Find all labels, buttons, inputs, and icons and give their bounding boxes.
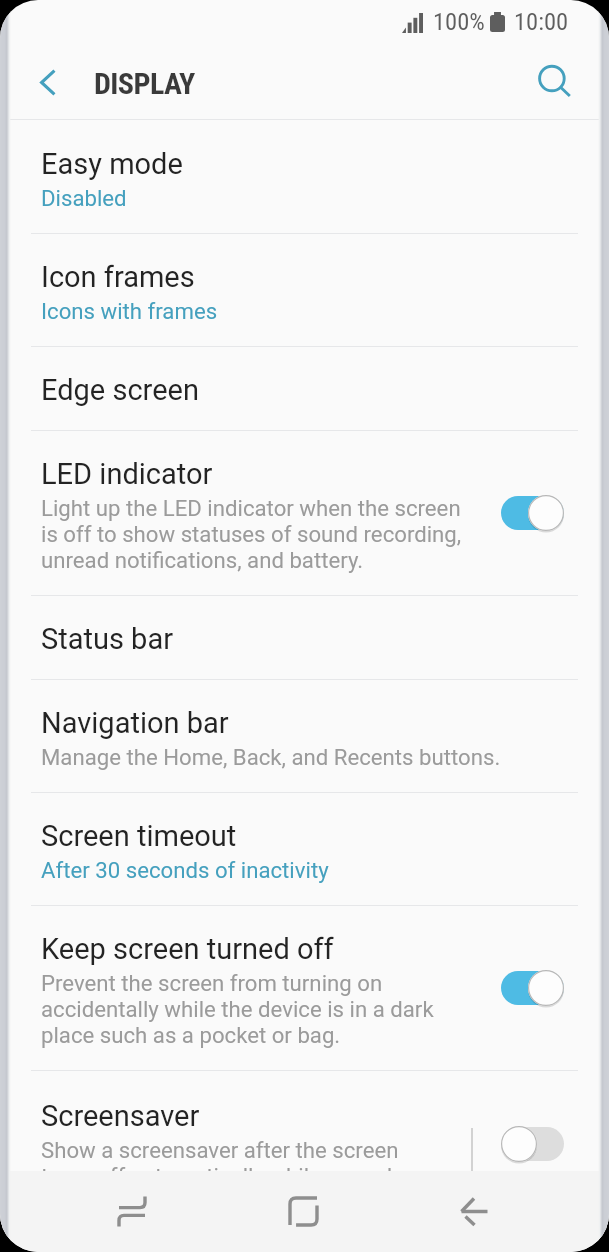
button[interactable]: Turn on [501, 1126, 564, 1162]
staticText: Easy mode [41, 147, 183, 181]
staticText: Navigation bar [41, 706, 229, 740]
button[interactable]: Search [527, 56, 583, 112]
button[interactable]: Turn off [501, 970, 564, 1006]
staticText: Screen timeout [41, 819, 237, 853]
staticText: Keep screen turned off [41, 932, 334, 966]
staticText: Edge screen [41, 373, 199, 407]
button[interactable]: Recents [46, 1171, 218, 1252]
staticText: Screensaver [41, 1099, 200, 1133]
staticText: Manage the Home, Back, and Recents butto… [41, 744, 501, 770]
staticText: Show a screensaver after the screen turn… [41, 1137, 436, 1171]
staticText: LED indicator [41, 457, 213, 491]
staticText: DISPLAY [94, 66, 195, 101]
button[interactable]: Icon frames [0, 234, 609, 346]
button[interactable]: Screensaver [0, 1071, 609, 1171]
button[interactable]: Turn off [501, 495, 564, 531]
staticText: Prevent the screen from turning on accid… [41, 970, 434, 1048]
staticText: Icon frames [41, 260, 195, 294]
staticText: Light up the LED indicator when the scre… [41, 495, 462, 573]
button[interactable]: Edge screen [0, 347, 609, 430]
button[interactable]: Screen timeout [0, 793, 609, 905]
staticText: 100% [433, 7, 485, 36]
staticText: After 30 seconds of inactivity [41, 857, 329, 883]
button[interactable]: Navigate up [20, 56, 76, 112]
staticText: Disabled [41, 185, 127, 211]
button[interactable]: Navigation bar [0, 680, 609, 792]
button[interactable]: Status bar [0, 596, 609, 679]
button[interactable]: Keep screen turned off [0, 906, 609, 1070]
button[interactable]: Home [218, 1171, 389, 1252]
button[interactable]: Easy mode [0, 120, 609, 233]
staticText: 10:00 [514, 7, 569, 36]
button[interactable]: Back [389, 1171, 560, 1252]
staticText: Icons with frames [41, 298, 218, 324]
staticText: Status bar [41, 622, 174, 656]
button[interactable]: LED indicator [0, 431, 609, 595]
